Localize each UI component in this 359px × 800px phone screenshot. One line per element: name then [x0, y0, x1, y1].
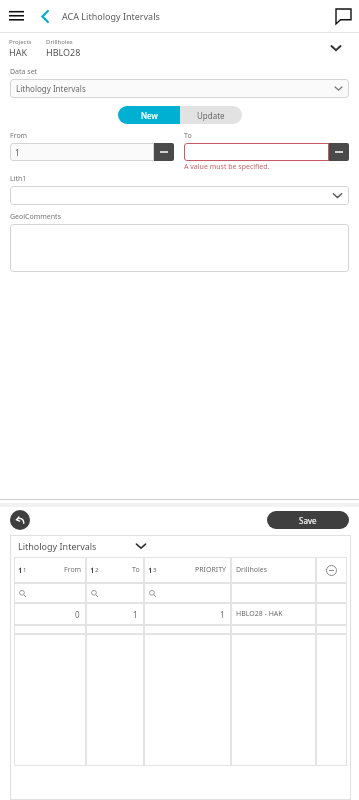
staticText: A value must be specified.	[184, 162, 270, 172]
button[interactable]: 1	[10, 143, 154, 161]
button[interactable]: Lithology Intervals	[10, 79, 349, 98]
staticText: 2	[95, 566, 99, 574]
staticText: New	[141, 110, 158, 121]
staticText: PRIORITY	[195, 565, 227, 575]
staticText: 0	[75, 609, 80, 620]
button[interactable]: Back	[32, 3, 58, 29]
button[interactable]: Back	[10, 510, 30, 530]
staticText: 1	[23, 566, 27, 574]
button[interactable]: New	[118, 106, 180, 124]
staticText: HBLO28	[46, 46, 81, 58]
staticText: Data set	[10, 67, 38, 77]
button[interactable]	[10, 186, 349, 205]
button[interactable]	[184, 143, 329, 161]
button[interactable]: Decrement	[329, 143, 349, 161]
staticText: HAK	[9, 46, 27, 58]
staticText: 3	[153, 566, 157, 574]
staticText: GeolComments	[10, 212, 61, 222]
staticText: From	[10, 131, 28, 141]
staticText: Save	[299, 515, 317, 526]
staticText: Projects	[9, 38, 32, 46]
button[interactable]: Menu	[0, 0, 32, 32]
staticText: Lithology Intervals	[16, 83, 86, 94]
button[interactable]: Remove	[326, 565, 337, 576]
staticText: Lithology Intervals	[18, 540, 97, 552]
button[interactable]: Update	[180, 106, 242, 124]
staticText: Drillholes	[46, 38, 73, 46]
staticText: Lith1	[10, 174, 27, 184]
staticText: 1	[220, 609, 225, 620]
button[interactable]: Save	[267, 511, 349, 529]
staticText: ACA Lithology Intervals	[62, 10, 160, 22]
button[interactable]: Comments	[327, 0, 359, 32]
button[interactable]: Lithology Intervals	[10, 535, 351, 557]
staticText: Update	[197, 110, 225, 121]
staticText: Drillholes	[236, 565, 268, 575]
staticText: To	[184, 131, 192, 141]
button[interactable]: Projects	[0, 33, 359, 63]
button[interactable]	[10, 224, 349, 272]
staticText: HBLO28 - HAK	[236, 609, 283, 619]
staticText: To	[132, 565, 140, 575]
button[interactable]: Decrement	[154, 143, 174, 161]
staticText: 1	[133, 609, 138, 620]
staticText: From	[64, 565, 82, 575]
staticText: 1	[15, 147, 20, 158]
